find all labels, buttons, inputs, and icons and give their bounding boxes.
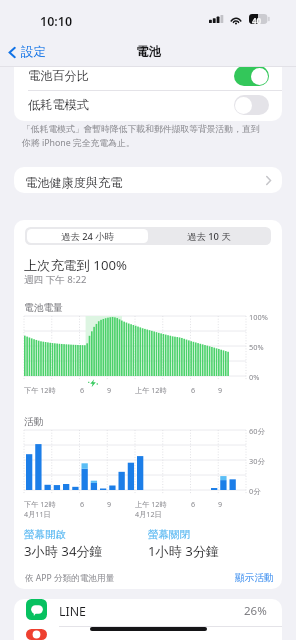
staticText: 30分: [249, 456, 265, 466]
other: Cellular signal: [209, 15, 224, 23]
staticText: 100%: [249, 312, 268, 322]
staticText: 依 APP 分類的電池用量: [25, 572, 115, 584]
button[interactable]: 顯示活動: [235, 572, 274, 584]
button[interactable]: 設定: [8, 44, 46, 60]
staticText: 40: [252, 15, 262, 26]
other: Wi-Fi: [230, 15, 242, 24]
staticText: 50%: [249, 342, 264, 352]
staticText: 26%: [244, 603, 267, 619]
staticText: 9: [107, 385, 112, 395]
staticText: 下午 12時: [24, 385, 56, 395]
staticText: 上午 12時: [135, 499, 167, 509]
staticText: 6: [80, 499, 85, 509]
staticText: 4月11日: [24, 509, 51, 519]
staticText: 3小時 34分鐘: [24, 542, 103, 560]
staticText: 下午 12時: [24, 499, 56, 509]
button[interactable]: 電池健康度與充電: [14, 167, 282, 193]
staticText: 0分: [249, 486, 261, 496]
button[interactable]: 過去 10 天: [148, 229, 269, 243]
staticText: 6: [191, 385, 196, 395]
staticText: 電池: [136, 44, 161, 60]
staticText: 4月12日: [135, 509, 162, 519]
button[interactable]: 電池百分比: [14, 67, 282, 90]
staticText: 活動: [24, 416, 44, 428]
staticText: 電池健康度與充電: [25, 175, 123, 190]
staticText: 9: [218, 499, 223, 509]
staticText: 10:10: [40, 13, 73, 30]
staticText: 9: [218, 385, 223, 395]
staticText: 設定: [21, 44, 46, 60]
staticText: 過去 10 天: [187, 230, 231, 243]
button[interactable]: 過去 24 小時: [27, 229, 148, 243]
staticText: 上次充電到 100%: [24, 256, 127, 274]
staticText: 「低耗電模式」會暫時降低下載和郵件擷取等背景活動，直到你將 iPhone 完全充…: [22, 124, 268, 149]
staticText: 電池百分比: [28, 68, 89, 83]
button[interactable]: LINE: [14, 599, 282, 626]
staticText: 9: [107, 499, 112, 509]
button[interactable]: 低耗電模式: [14, 90, 282, 121]
staticText: 1小時 3分鐘: [148, 542, 220, 560]
staticText: 螢幕開啟: [24, 528, 66, 541]
staticText: 低耗電模式: [28, 97, 89, 112]
staticText: 電池電量: [24, 302, 63, 314]
staticText: LINE: [59, 603, 86, 620]
staticText: 週四 下午 8:22: [24, 273, 87, 286]
staticText: 6: [191, 499, 196, 509]
staticText: 60分: [249, 426, 265, 436]
staticText: 上午 12時: [135, 385, 167, 395]
other: Battery 40 percent: [249, 14, 269, 25]
staticText: 0%: [249, 372, 260, 382]
staticText: 6: [80, 385, 85, 395]
staticText: 螢幕關閉: [148, 528, 190, 541]
staticText: 過去 24 小時: [61, 230, 115, 243]
staticText: 顯示活動: [235, 572, 274, 584]
button[interactable]: [14, 629, 282, 640]
